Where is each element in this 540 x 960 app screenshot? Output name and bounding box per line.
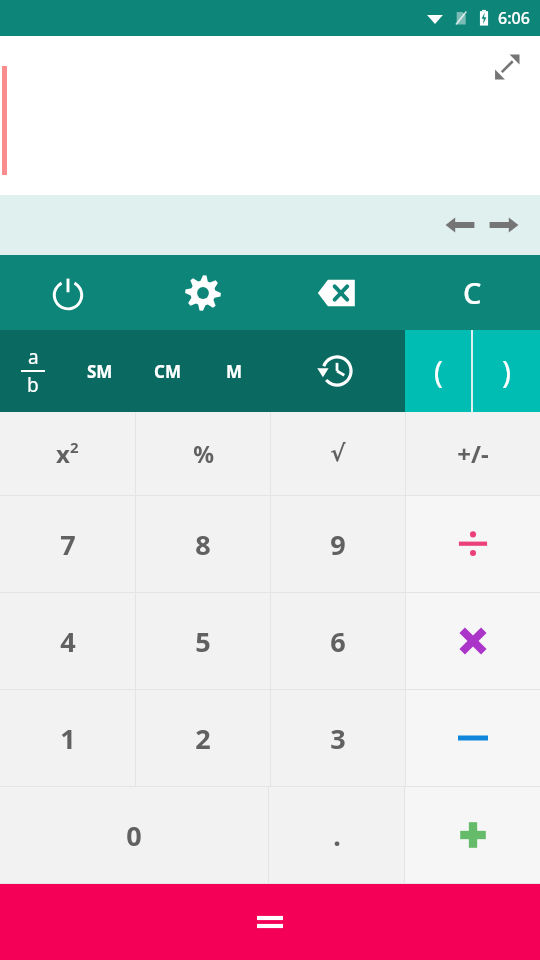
button[interactable]: Subtract bbox=[406, 690, 540, 786]
staticText: 6:06 bbox=[498, 7, 530, 29]
button[interactable]: √ bbox=[271, 412, 405, 495]
staticText: SM bbox=[87, 360, 113, 383]
button[interactable]: 0 bbox=[0, 787, 268, 883]
staticText: 7 bbox=[60, 526, 76, 563]
button[interactable]: Move cursor left bbox=[438, 203, 482, 247]
button[interactable]: 5 bbox=[136, 593, 270, 689]
button[interactable]: Fraction bbox=[0, 330, 66, 412]
staticText: 9 bbox=[330, 526, 346, 563]
button[interactable]: Equals bbox=[0, 884, 540, 960]
button[interactable]: Expand bbox=[486, 46, 528, 88]
staticText: 3 bbox=[330, 720, 346, 757]
button[interactable]: 1 bbox=[0, 690, 135, 786]
button[interactable]: Divide bbox=[406, 496, 540, 592]
staticText: b bbox=[27, 372, 39, 398]
staticText: ( bbox=[434, 351, 443, 392]
staticText: . bbox=[333, 817, 341, 854]
button[interactable]: +/- bbox=[406, 412, 540, 495]
staticText: 6 bbox=[330, 623, 346, 660]
staticText: 2 bbox=[195, 720, 211, 757]
staticText: % bbox=[193, 438, 214, 469]
staticText: ) bbox=[502, 351, 511, 392]
button[interactable]: CM bbox=[134, 330, 200, 412]
button[interactable]: M bbox=[200, 330, 268, 412]
button[interactable]: 7 bbox=[0, 496, 135, 592]
staticText: C bbox=[463, 273, 482, 312]
staticText: 0 bbox=[126, 817, 142, 854]
button[interactable]: ( bbox=[405, 330, 471, 412]
staticText: +/- bbox=[457, 437, 489, 470]
button[interactable]: % bbox=[136, 412, 270, 495]
button[interactable]: Move cursor right bbox=[482, 203, 526, 247]
staticText: 5 bbox=[195, 623, 211, 660]
button[interactable]: SM bbox=[66, 330, 134, 412]
button[interactable]: ) bbox=[473, 330, 540, 412]
button[interactable]: Power bbox=[0, 255, 135, 330]
staticText: 2 bbox=[70, 437, 79, 457]
button[interactable]: 9 bbox=[271, 496, 405, 592]
button[interactable]: Add bbox=[405, 787, 540, 883]
staticText: x bbox=[56, 437, 70, 470]
button[interactable]: History bbox=[268, 330, 405, 412]
button[interactable]: 2 bbox=[136, 690, 270, 786]
staticText: 8 bbox=[195, 526, 211, 563]
button[interactable]: Multiply bbox=[406, 593, 540, 689]
button[interactable]: . bbox=[269, 787, 404, 883]
button[interactable]: Settings bbox=[135, 255, 270, 330]
button[interactable]: C bbox=[405, 255, 540, 330]
button[interactable]: 4 bbox=[0, 593, 135, 689]
staticText: M bbox=[226, 360, 243, 383]
staticText: 1 bbox=[60, 720, 76, 757]
staticText: CM bbox=[154, 360, 181, 383]
button[interactable]: 3 bbox=[271, 690, 405, 786]
button[interactable]: 6 bbox=[271, 593, 405, 689]
staticText: 4 bbox=[60, 623, 76, 660]
staticText: a bbox=[28, 344, 39, 370]
button[interactable]: 8 bbox=[136, 496, 270, 592]
staticText: √ bbox=[330, 440, 346, 467]
button[interactable]: x bbox=[0, 412, 135, 495]
button[interactable]: Backspace bbox=[270, 255, 405, 330]
